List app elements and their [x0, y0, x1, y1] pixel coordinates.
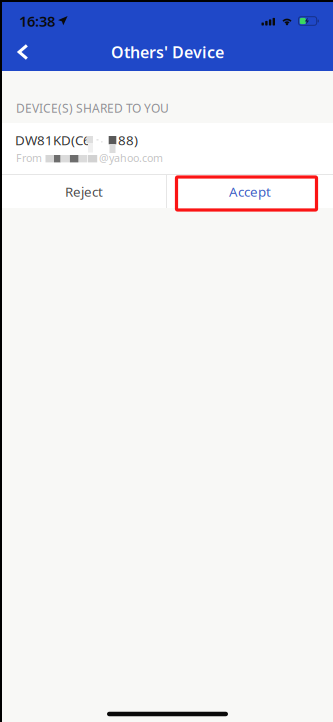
button[interactable]: Accept: [167, 175, 333, 208]
staticText: 88): [118, 131, 138, 149]
button[interactable]: Back: [2, 33, 44, 71]
button[interactable]: Reject: [2, 175, 166, 208]
staticText: DEVICE(S) SHARED TO YOU: [16, 100, 169, 116]
staticText: Accept: [229, 183, 271, 200]
staticText: 16:38: [19, 11, 55, 31]
staticText: Reject: [65, 183, 103, 200]
staticText: From: [16, 151, 42, 165]
staticText: @yahoo.com: [99, 151, 163, 165]
staticText: Others' Device: [111, 41, 224, 63]
staticText: DW81KD(C6: [15, 131, 91, 149]
